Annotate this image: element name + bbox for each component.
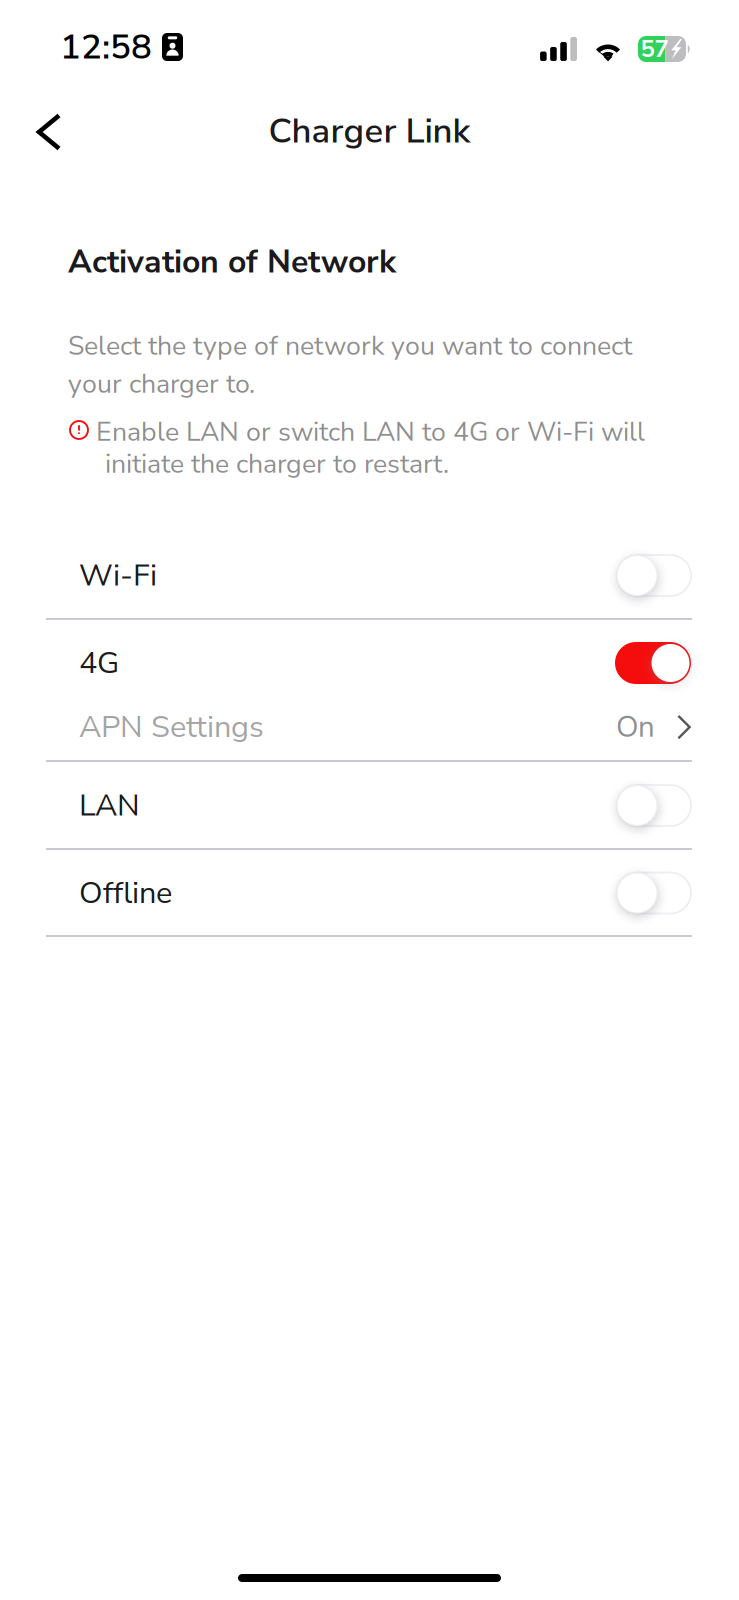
staticText: Activation of Network <box>68 240 396 284</box>
staticText: On <box>616 707 655 747</box>
staticText: 4G <box>79 642 119 684</box>
button[interactable]: Offline <box>0 850 739 936</box>
staticText: 57 <box>640 33 668 65</box>
staticText: Select the type of network you want to c… <box>68 328 632 364</box>
staticText: APN Settings <box>79 706 264 748</box>
staticText: Enable LAN or switch LAN to 4G or Wi-Fi … <box>96 414 645 450</box>
staticText: LAN <box>79 785 140 826</box>
staticText: Offline <box>79 872 172 914</box>
button[interactable]: APN Settings <box>0 700 739 754</box>
button[interactable]: 4G <box>0 620 739 706</box>
staticText: Charger Link <box>268 107 470 155</box>
staticText: Wi-Fi <box>79 555 157 596</box>
button[interactable]: Back <box>12 95 86 169</box>
staticText: your charger to. <box>68 366 255 402</box>
staticText: initiate the charger to restart. <box>105 446 449 482</box>
button[interactable]: LAN <box>0 762 739 849</box>
staticText: 12:58 <box>60 23 152 71</box>
button[interactable]: Wi-Fi <box>0 532 739 619</box>
